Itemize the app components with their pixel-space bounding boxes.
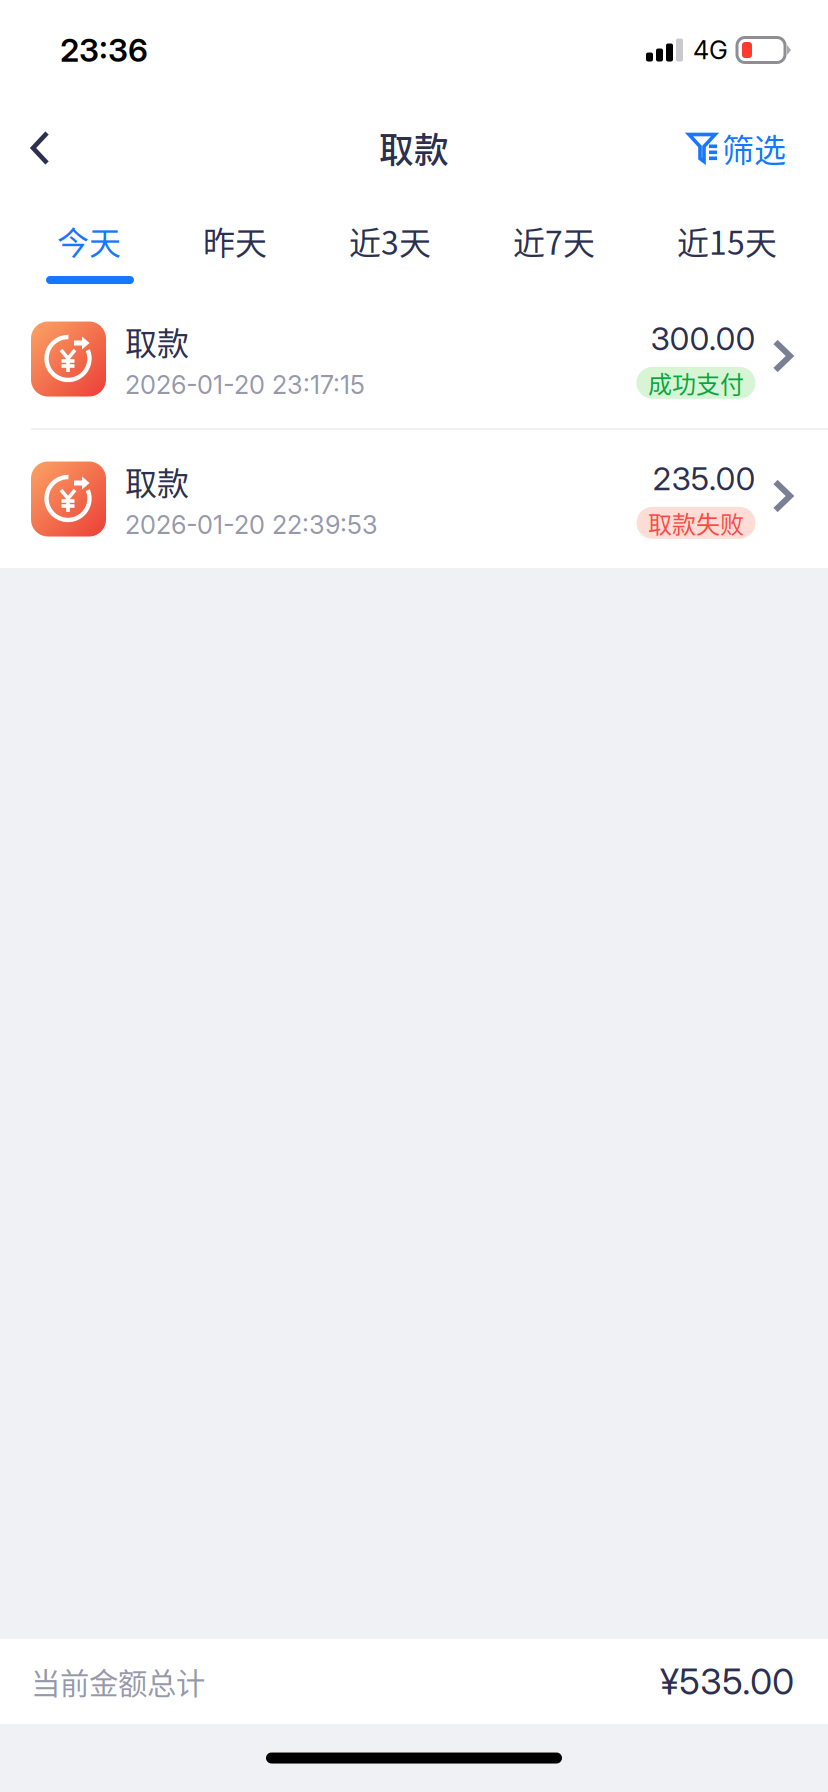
staticText: 2026-01-20 23:17:15 xyxy=(125,369,365,400)
staticText: 23:36 xyxy=(60,31,148,69)
staticText: 235.00 xyxy=(652,459,755,498)
button[interactable]: 取款 xyxy=(0,290,828,428)
button[interactable]: 今天 xyxy=(57,196,121,264)
staticText: 2026-01-20 22:39:53 xyxy=(125,509,378,540)
staticText: 近7天 xyxy=(513,218,595,264)
staticText: 取款 xyxy=(379,123,449,173)
staticText: 取款 xyxy=(125,458,189,504)
staticText: 昨天 xyxy=(203,218,267,264)
button[interactable]: 返回 xyxy=(3,100,77,196)
button[interactable]: 昨天 xyxy=(203,196,267,264)
button[interactable]: 筛选 xyxy=(675,100,786,196)
staticText: ¥535.00 xyxy=(660,1660,794,1703)
staticText: 取款失败 xyxy=(648,505,744,540)
staticText: 当前金额总计 xyxy=(31,1660,205,1703)
button[interactable]: 近7天 xyxy=(513,196,595,264)
staticText: 近3天 xyxy=(349,218,431,264)
staticText: 300.00 xyxy=(650,319,755,358)
staticText: 取款 xyxy=(125,318,189,364)
staticText: 4G xyxy=(693,35,728,65)
staticText: 近15天 xyxy=(677,218,777,264)
staticText: 今天 xyxy=(57,218,121,264)
button[interactable]: 近3天 xyxy=(349,196,431,264)
staticText: 成功支付 xyxy=(648,365,744,400)
button[interactable]: 取款 xyxy=(0,430,828,568)
staticText: 筛选 xyxy=(722,125,786,171)
button[interactable]: 近15天 xyxy=(677,196,777,264)
